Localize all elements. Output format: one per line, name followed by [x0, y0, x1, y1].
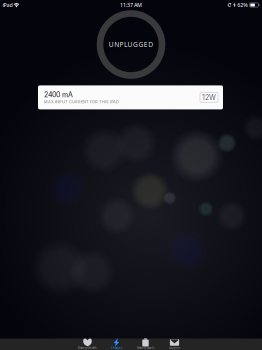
staticText: 12W [202, 93, 216, 102]
staticText: Charges [111, 346, 122, 350]
button[interactable]: Charges [102, 338, 131, 350]
staticText: iPad [2, 1, 12, 9]
button[interactable]: Battery Health [73, 338, 102, 350]
staticText: MAX INPUT CURRENT FOR THIS IPAD [44, 99, 119, 104]
button[interactable]: Support [160, 338, 189, 350]
staticText: 62% [237, 1, 248, 9]
staticText: UNPLUGGED [109, 40, 153, 49]
button[interactable]: Battery Levels [131, 338, 160, 350]
staticText: 2400 mA [44, 91, 73, 99]
staticText: Battery Health [78, 346, 97, 350]
staticText: Support [169, 346, 180, 350]
staticText: Battery Levels [137, 346, 154, 350]
staticText: 11:37 AM [120, 1, 142, 9]
